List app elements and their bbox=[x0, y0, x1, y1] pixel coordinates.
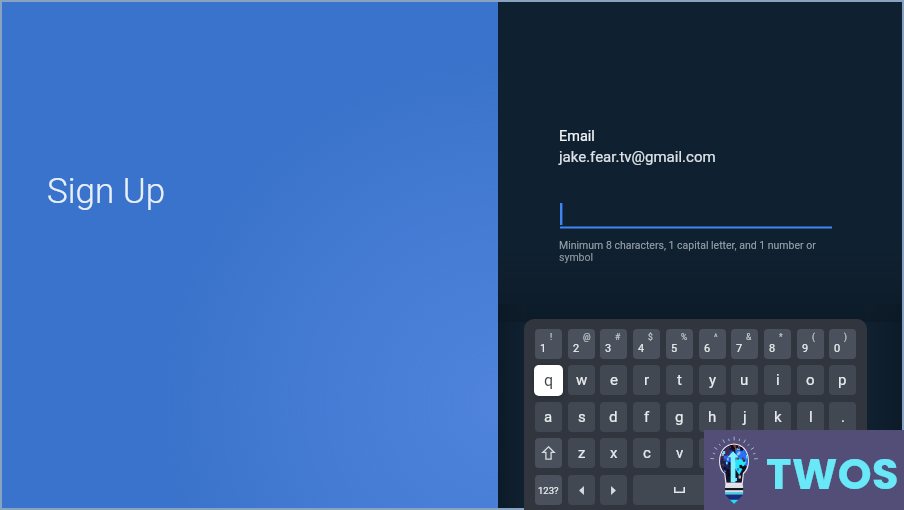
button[interactable]: Move right bbox=[600, 475, 627, 505]
staticText: y bbox=[709, 371, 717, 389]
staticText: TWOS bbox=[766, 444, 899, 504]
staticText: l bbox=[809, 408, 813, 426]
staticText: x bbox=[610, 444, 618, 462]
staticText: Sign Up bbox=[47, 171, 166, 212]
staticText: t bbox=[677, 371, 682, 389]
staticText: 8 bbox=[769, 342, 776, 355]
button[interactable]: c bbox=[633, 438, 660, 468]
button[interactable]: 2 @ bbox=[568, 329, 595, 359]
button[interactable]: t bbox=[666, 365, 693, 395]
button[interactable]: f bbox=[633, 402, 660, 432]
staticText: @ bbox=[583, 332, 591, 342]
staticText: g bbox=[675, 408, 684, 426]
button[interactable]: Password entry field bbox=[560, 197, 832, 231]
staticText: r bbox=[644, 371, 650, 389]
staticText: # bbox=[615, 332, 621, 342]
staticText: Minimum 8 characters, 1 capital letter, … bbox=[559, 239, 817, 263]
button[interactable]: x bbox=[600, 438, 627, 468]
button[interactable]: Move left bbox=[568, 475, 595, 505]
staticText: b bbox=[708, 444, 717, 462]
button[interactable]: n bbox=[731, 438, 758, 468]
staticText: j bbox=[743, 408, 747, 426]
staticText: d bbox=[609, 408, 618, 426]
staticText: a bbox=[544, 408, 553, 426]
button[interactable]: 9 ( bbox=[797, 329, 824, 359]
button[interactable]: Enter bbox=[797, 475, 856, 505]
staticText: c bbox=[643, 444, 651, 462]
button[interactable]: h bbox=[699, 402, 726, 432]
button[interactable]: 3 # bbox=[600, 329, 627, 359]
staticText: , bbox=[809, 444, 812, 462]
staticText: ^ bbox=[714, 332, 718, 342]
button[interactable]: 1 ! bbox=[535, 329, 562, 359]
staticText: p bbox=[838, 371, 847, 389]
staticText: n bbox=[740, 444, 749, 462]
button[interactable]: 6 ^ bbox=[699, 329, 726, 359]
staticText: i bbox=[776, 371, 780, 389]
staticText: k bbox=[774, 408, 782, 426]
staticText: ( bbox=[812, 332, 815, 342]
staticText: 7 bbox=[736, 342, 743, 355]
staticText: o bbox=[806, 371, 815, 389]
button[interactable]: q bbox=[534, 365, 563, 396]
button[interactable]: u bbox=[731, 365, 758, 395]
button[interactable]: j bbox=[731, 402, 758, 432]
staticText: 0 bbox=[834, 342, 841, 355]
button[interactable]: 4 $ bbox=[633, 329, 660, 359]
staticText: 1 bbox=[540, 342, 547, 355]
staticText: f bbox=[644, 408, 650, 426]
button[interactable]: 5 % bbox=[666, 329, 693, 359]
staticText: 6 bbox=[704, 342, 711, 355]
staticText: q bbox=[544, 371, 554, 390]
staticText: 3 bbox=[605, 342, 612, 355]
staticText: jake.fear.tv@gmail.com bbox=[559, 148, 716, 166]
staticText: Email bbox=[559, 128, 595, 145]
staticText: % bbox=[681, 332, 688, 342]
staticText: h bbox=[708, 408, 717, 426]
button[interactable]: 8 * bbox=[764, 329, 791, 359]
button[interactable]: 123? bbox=[535, 475, 562, 505]
button[interactable]: 0 ) bbox=[829, 329, 856, 359]
staticText: m bbox=[771, 444, 785, 462]
button[interactable]: o bbox=[797, 365, 824, 395]
button[interactable]: e bbox=[600, 365, 627, 395]
button[interactable]: , bbox=[797, 438, 824, 468]
button[interactable]: d bbox=[600, 402, 627, 432]
button[interactable]: g bbox=[666, 402, 693, 432]
button[interactable]: z bbox=[568, 438, 595, 468]
staticText: v bbox=[676, 444, 684, 462]
button[interactable]: y bbox=[699, 365, 726, 395]
button[interactable]: a bbox=[535, 402, 562, 432]
button[interactable]: m bbox=[764, 438, 791, 468]
button[interactable]: v bbox=[666, 438, 693, 468]
button[interactable]: s bbox=[568, 402, 595, 432]
button[interactable]: l bbox=[797, 402, 824, 432]
button[interactable]: r bbox=[633, 365, 660, 395]
button[interactable]: . bbox=[829, 402, 856, 432]
staticText: $ bbox=[648, 332, 653, 342]
staticText: 123? bbox=[538, 485, 559, 496]
staticText: & bbox=[746, 332, 752, 342]
button[interactable]: k bbox=[764, 402, 791, 432]
staticText: s bbox=[578, 408, 586, 426]
staticText: 9 bbox=[802, 342, 809, 355]
staticText: w bbox=[576, 371, 588, 389]
staticText: 2 bbox=[573, 342, 580, 355]
staticText: e bbox=[610, 371, 618, 389]
button[interactable]: w bbox=[568, 365, 595, 395]
staticText: ) bbox=[844, 332, 847, 342]
staticText: ! bbox=[550, 332, 553, 342]
button[interactable]: Delete bbox=[731, 475, 790, 505]
staticText: u bbox=[740, 371, 749, 389]
staticText: . bbox=[841, 408, 845, 426]
staticText: 5 bbox=[671, 342, 678, 355]
button[interactable]: 7 & bbox=[731, 329, 758, 359]
staticText: * bbox=[779, 332, 783, 342]
staticText: 4 bbox=[638, 342, 645, 355]
button[interactable]: p bbox=[829, 365, 856, 395]
staticText: z bbox=[578, 444, 586, 462]
button[interactable]: b bbox=[699, 438, 726, 468]
button[interactable]: Shift bbox=[535, 438, 562, 468]
button[interactable]: Space bbox=[633, 475, 725, 505]
button[interactable]: i bbox=[764, 365, 791, 395]
